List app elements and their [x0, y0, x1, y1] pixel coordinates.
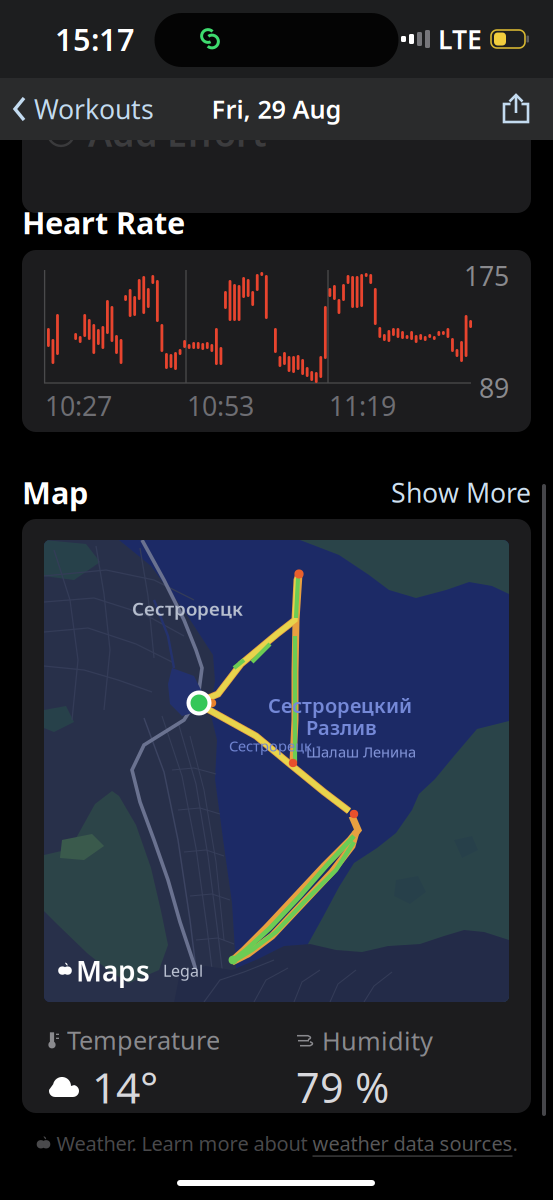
- staticText: Сестрорецкий: [268, 692, 412, 719]
- staticText: Add Effort: [88, 109, 267, 157]
- staticText: 175: [464, 258, 509, 293]
- staticText: Humidity: [322, 1024, 433, 1057]
- staticText: 14°: [92, 1059, 158, 1115]
- staticText: Show More: [391, 475, 531, 510]
- staticText: Workouts: [34, 91, 154, 127]
- staticText: Fri, 29 Aug: [211, 92, 341, 126]
- staticText: Temperature: [67, 1023, 220, 1057]
- staticText: Сестрорецк -: [229, 736, 321, 755]
- staticText: 10:53: [187, 388, 254, 423]
- staticText: 79 %: [296, 1059, 389, 1114]
- staticText: LTE: [438, 21, 482, 57]
- staticText: Heart Rate: [22, 202, 185, 243]
- button[interactable]: Show More: [391, 475, 531, 510]
- staticText: .: [512, 1130, 517, 1157]
- staticText: 10:27: [45, 388, 112, 423]
- staticText: Шалаш Ленина: [306, 742, 416, 761]
- staticText: 15:17: [55, 19, 135, 59]
- button[interactable]: Workouts: [0, 82, 154, 136]
- button[interactable]: Share: [501, 85, 553, 133]
- staticText: Legal: [163, 960, 203, 981]
- staticText: 11:19: [329, 388, 396, 423]
- staticText: Maps: [76, 952, 150, 989]
- staticText: Сестрорецк: [132, 596, 243, 621]
- staticText: Weather. Learn more about: [51, 1130, 312, 1157]
- staticText: weather data sources: [312, 1130, 512, 1157]
- staticText: Map: [22, 472, 88, 513]
- staticText: 89: [479, 370, 509, 405]
- staticText: Разлив: [306, 714, 377, 741]
